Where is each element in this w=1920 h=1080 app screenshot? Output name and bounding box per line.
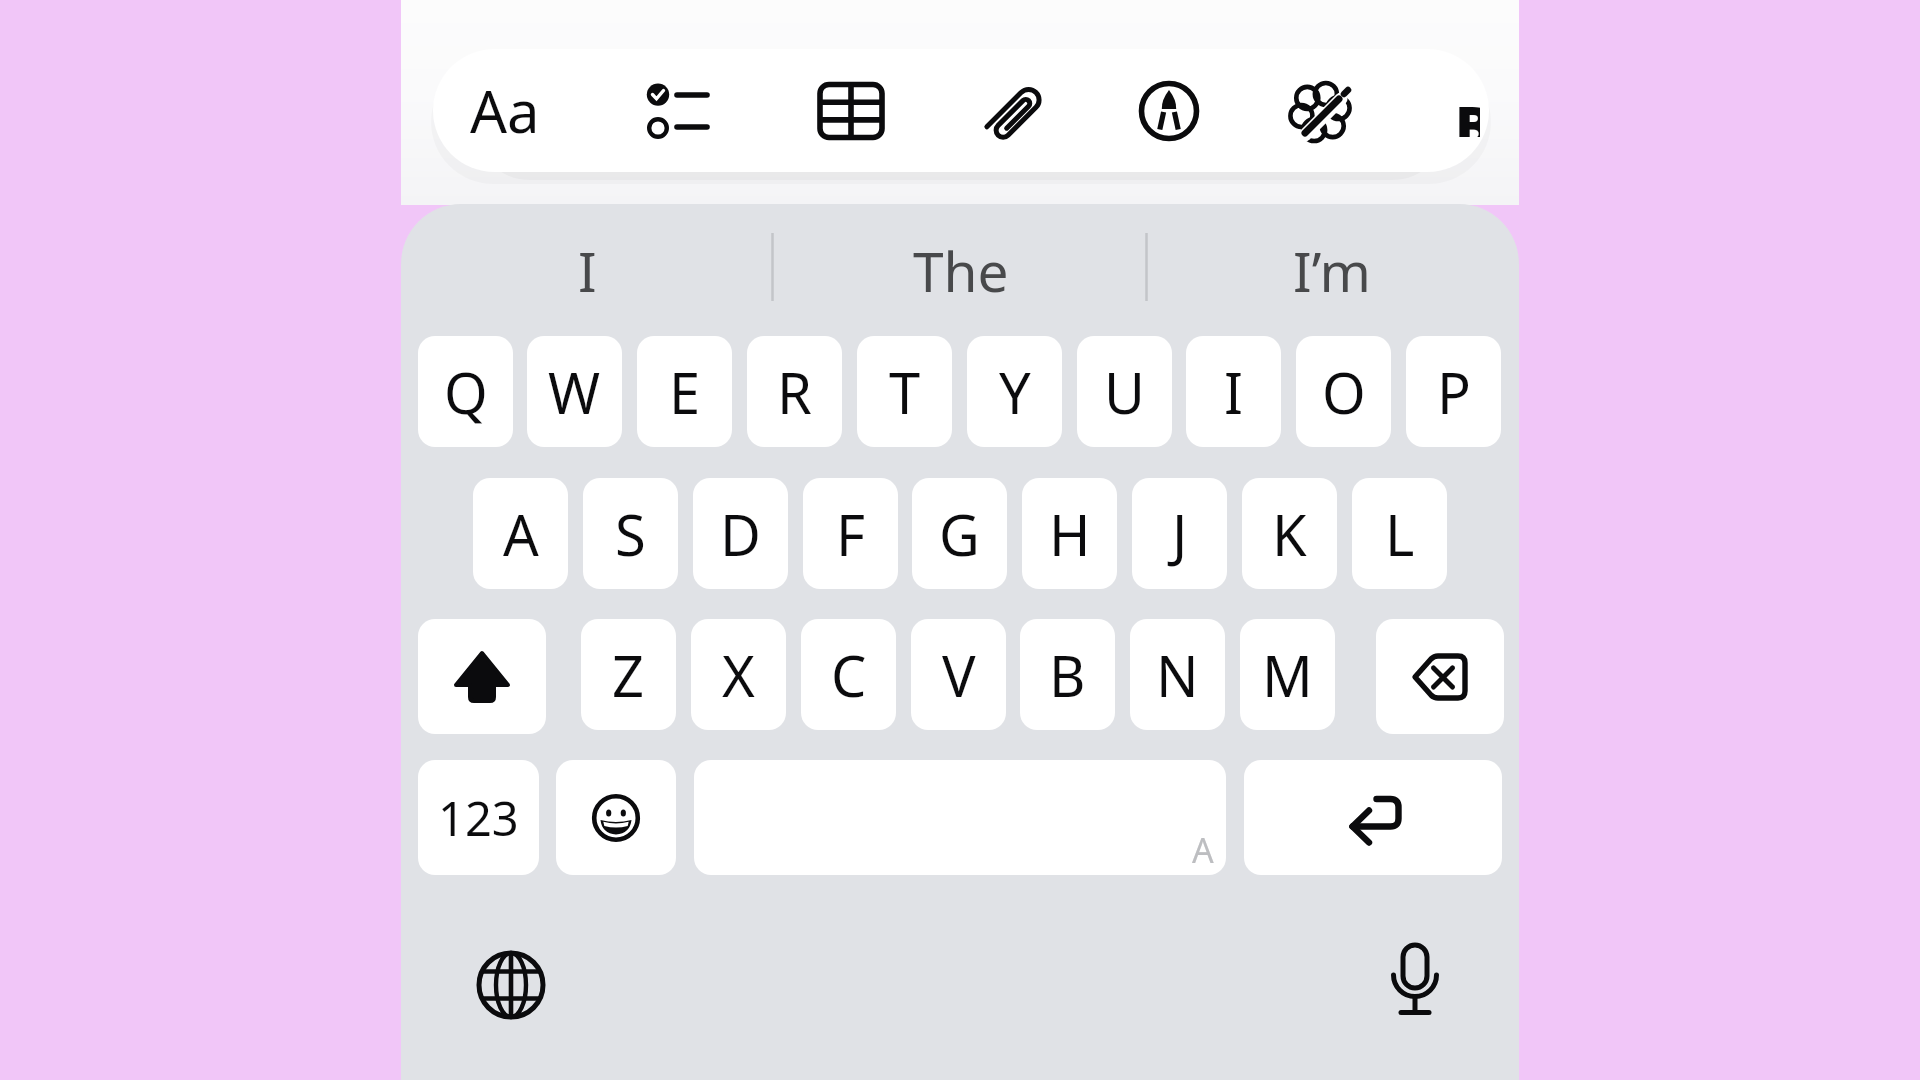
button[interactable] (1258, 49, 1388, 172)
button[interactable]: D (693, 478, 788, 589)
button[interactable] (786, 49, 916, 172)
button[interactable]: B (1020, 619, 1115, 730)
button[interactable]: L (1352, 478, 1447, 589)
button[interactable]: F (803, 478, 898, 589)
button[interactable]: X (691, 619, 786, 730)
button[interactable]: C (801, 619, 896, 730)
button[interactable]: K (1242, 478, 1337, 589)
staticText: E (669, 354, 701, 430)
button[interactable]: V (911, 619, 1006, 730)
staticText: U (1104, 354, 1145, 430)
staticText: The (913, 233, 1009, 308)
staticText: C (831, 637, 867, 713)
button[interactable] (607, 49, 737, 172)
button[interactable]: Aa (440, 49, 570, 172)
staticText: Q (444, 354, 488, 430)
button[interactable] (1376, 619, 1504, 734)
staticText: J (1172, 496, 1188, 572)
button[interactable]: G (912, 478, 1007, 589)
button[interactable] (1104, 49, 1234, 172)
staticText: B (1049, 637, 1086, 713)
button[interactable]: W (527, 336, 622, 447)
button[interactable]: Q (418, 336, 513, 447)
button[interactable]: S (583, 478, 678, 589)
button[interactable]: I (401, 214, 774, 326)
button[interactable]: O (1296, 336, 1391, 447)
button[interactable]: I’m (1146, 214, 1519, 326)
staticText: M (1262, 637, 1313, 713)
staticText: K (1272, 496, 1307, 572)
staticText: R (777, 354, 812, 430)
button[interactable]: The (774, 214, 1147, 326)
button[interactable]: Y (967, 336, 1062, 447)
staticText: Z (612, 637, 645, 713)
staticText: T (889, 354, 921, 430)
staticText: I (578, 233, 597, 308)
staticText: G (939, 496, 980, 572)
button[interactable]: T (857, 336, 952, 447)
button[interactable]: I (1186, 336, 1281, 447)
button[interactable]: Z (581, 619, 676, 730)
staticText: A (1192, 827, 1214, 873)
button[interactable] (1244, 760, 1502, 875)
staticText: D (720, 496, 761, 572)
button[interactable]: M (1240, 619, 1335, 730)
staticText: Y (999, 354, 1031, 430)
staticText: O (1322, 354, 1366, 430)
staticText: W (548, 354, 601, 430)
button[interactable]: J (1132, 478, 1227, 589)
staticText: A (503, 496, 539, 572)
staticText: N (1156, 637, 1199, 713)
button[interactable]: U (1077, 336, 1172, 447)
staticText: Aa (470, 71, 540, 150)
staticText: F (836, 496, 866, 572)
button[interactable]: H (1022, 478, 1117, 589)
staticText: L (1385, 496, 1415, 572)
staticText: P (1437, 354, 1471, 430)
button[interactable]: P (1406, 336, 1501, 447)
staticText: 123 (438, 786, 519, 850)
button[interactable]: A (473, 478, 568, 589)
button[interactable]: N (1130, 619, 1225, 730)
staticText: I’m (1293, 233, 1372, 308)
staticText: I (1224, 354, 1243, 430)
staticText: B (1455, 87, 1480, 137)
button[interactable]: B (1455, 87, 1480, 137)
button[interactable] (1345, 910, 1485, 1060)
button[interactable]: A (694, 760, 1226, 875)
button[interactable] (950, 49, 1080, 172)
button[interactable] (441, 915, 581, 1055)
staticText: S (615, 496, 646, 572)
button[interactable]: R (747, 336, 842, 447)
button[interactable]: 123 (418, 760, 539, 875)
staticText: H (1049, 496, 1091, 572)
staticText: X (722, 637, 755, 713)
button[interactable] (418, 619, 546, 734)
staticText: V (942, 637, 976, 713)
button[interactable] (556, 760, 676, 875)
button[interactable]: E (637, 336, 732, 447)
